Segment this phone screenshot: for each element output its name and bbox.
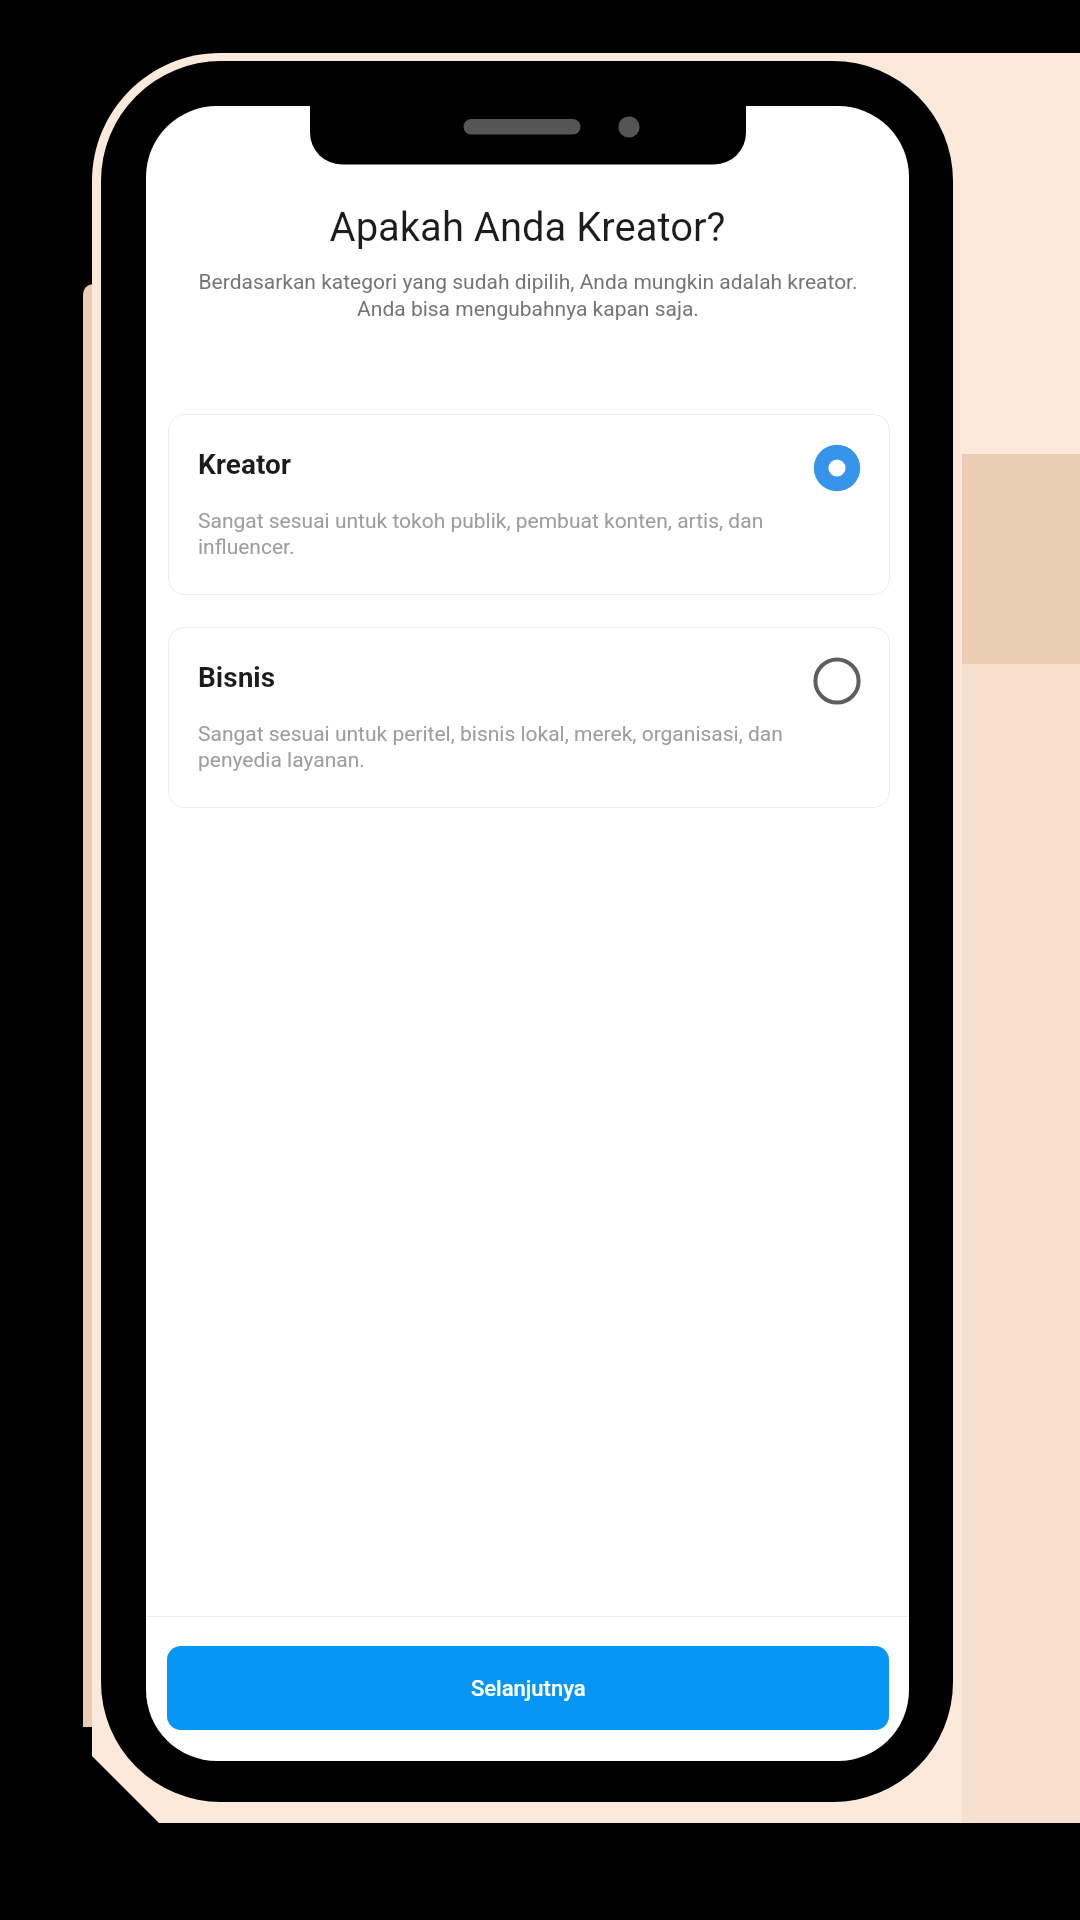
button[interactable]: Kreator bbox=[168, 414, 890, 595]
staticText: Kreator bbox=[198, 448, 292, 481]
staticText: Selanjutnya bbox=[471, 1676, 586, 1702]
button[interactable]: Kreator selected bbox=[813, 444, 861, 492]
button[interactable]: Selanjutnya bbox=[167, 1646, 889, 1730]
staticText: Bisnis bbox=[198, 661, 276, 694]
staticText: Sangat sesuai untuk peritel, bisnis loka… bbox=[198, 722, 798, 772]
staticText: Apakah Anda Kreator? bbox=[146, 204, 909, 251]
staticText: Sangat sesuai untuk tokoh publik, pembua… bbox=[198, 509, 798, 559]
button[interactable]: Bisnis not selected bbox=[813, 657, 861, 705]
button[interactable]: Bisnis bbox=[168, 627, 890, 808]
staticText: Berdasarkan kategori yang sudah dipilih,… bbox=[188, 270, 868, 322]
